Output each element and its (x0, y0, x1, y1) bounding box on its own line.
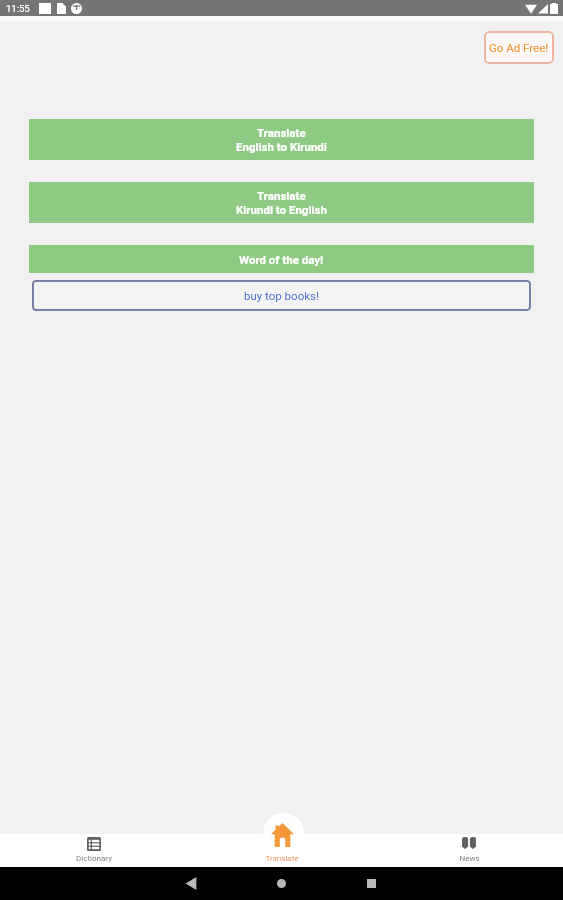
staticText: buy top books! (244, 289, 319, 302)
button[interactable]: Back (167, 867, 215, 900)
button[interactable]: Translate (188, 814, 376, 867)
staticText: Translate (265, 854, 299, 863)
button[interactable]: Translate (29, 119, 534, 160)
button[interactable]: buy top books! (32, 280, 531, 311)
button[interactable]: Dictionary (0, 814, 188, 867)
button[interactable]: Home (257, 867, 305, 900)
staticText: Kirundi to English (236, 203, 327, 216)
staticText: Dictionary (76, 854, 112, 863)
staticText: News (459, 854, 480, 863)
button[interactable]: Go Ad Free! (484, 31, 554, 64)
button[interactable]: Recent apps (347, 867, 395, 900)
staticText: Translate (257, 189, 306, 202)
staticText: 11:55 (6, 3, 30, 14)
staticText: Word of the day! (239, 253, 324, 266)
staticText: Go Ad Free! (489, 41, 549, 54)
button[interactable]: Word of the day! (29, 245, 534, 273)
staticText: English to Kirundi (236, 140, 327, 153)
staticText: Translate (257, 126, 306, 139)
button[interactable]: News (375, 814, 563, 867)
button[interactable]: Translate (29, 182, 534, 223)
